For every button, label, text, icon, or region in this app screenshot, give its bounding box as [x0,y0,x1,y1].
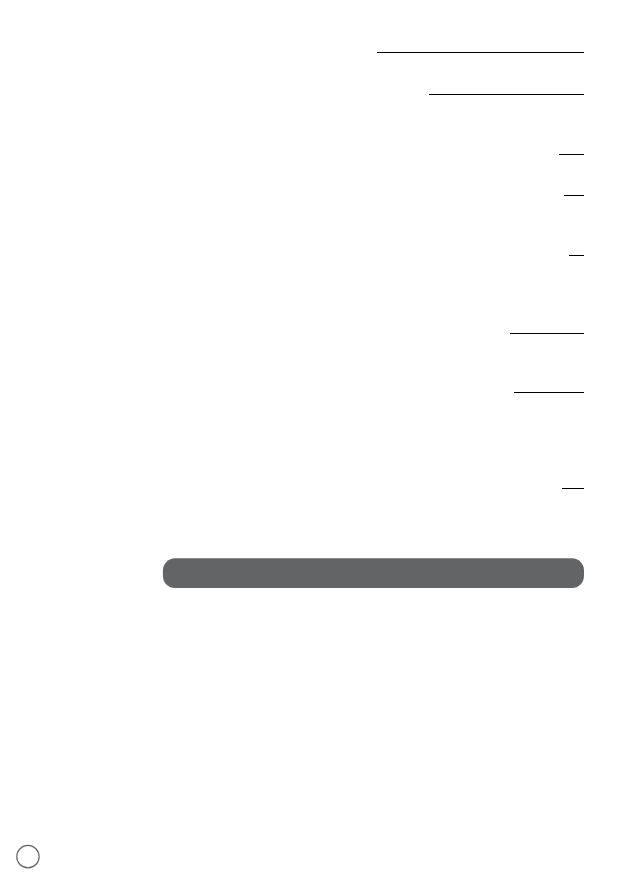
button[interactable]: Continue [162,558,585,589]
button[interactable]: Select option [16,845,40,869]
